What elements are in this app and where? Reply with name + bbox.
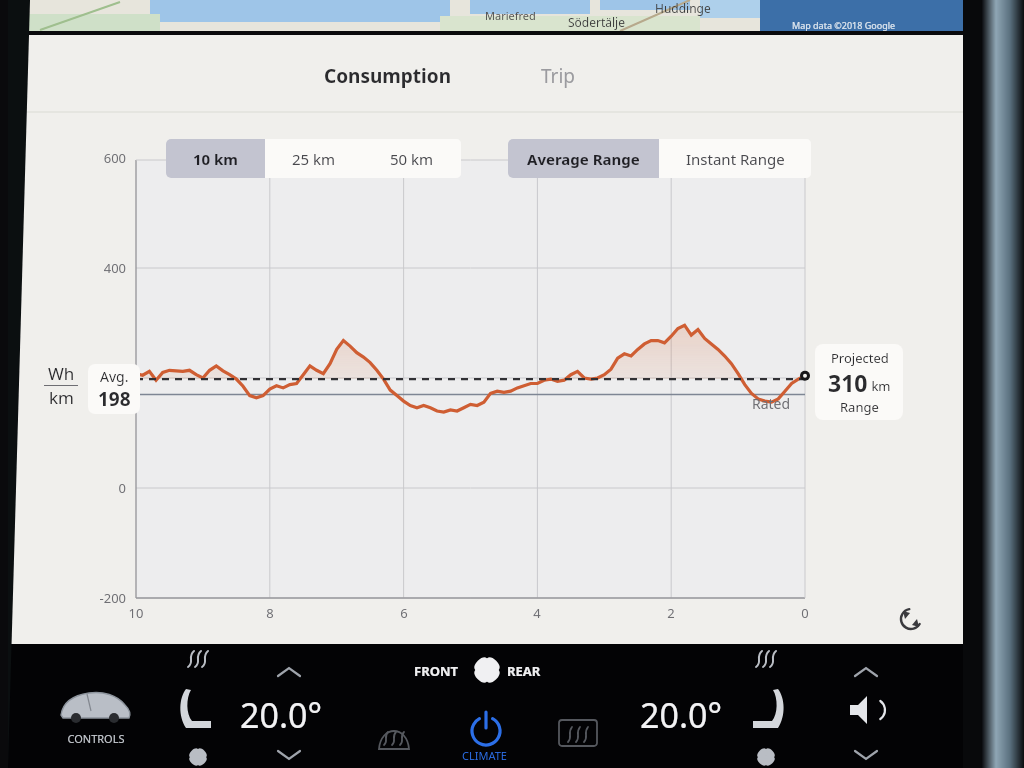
staticText: Trip bbox=[541, 63, 576, 89]
button[interactable]: Swap units bbox=[895, 603, 927, 635]
staticText: 20.0° bbox=[240, 692, 323, 738]
staticText: 25 km bbox=[292, 149, 336, 169]
staticText: 0 bbox=[787, 604, 823, 622]
staticText: Range bbox=[840, 398, 879, 416]
button[interactable]: Rear defrost bbox=[554, 710, 604, 758]
staticText: 10 km bbox=[193, 149, 238, 169]
button[interactable]: Increase left temperature bbox=[268, 655, 312, 693]
button[interactable]: Mute bbox=[838, 688, 888, 734]
staticText: Wh bbox=[48, 362, 75, 385]
staticText: CLIMATE bbox=[462, 748, 507, 763]
button[interactable]: 25 km bbox=[265, 139, 363, 178]
button[interactable]: Average Range bbox=[508, 139, 659, 178]
staticText: 6 bbox=[386, 604, 422, 622]
button[interactable]: Right seat bbox=[744, 690, 790, 768]
button[interactable]: REAR bbox=[507, 662, 541, 680]
button[interactable]: 20.0° bbox=[640, 692, 723, 738]
button[interactable]: Consumption bbox=[310, 57, 465, 95]
staticText: CONTROLS bbox=[55, 731, 137, 746]
staticText: Avg. bbox=[100, 367, 129, 386]
button[interactable]: FRONT bbox=[414, 662, 459, 680]
button[interactable]: 10 km bbox=[166, 139, 265, 178]
staticText: Instant Range bbox=[686, 149, 785, 169]
staticText: Average Range bbox=[527, 149, 640, 169]
staticText: 10 bbox=[118, 604, 154, 622]
staticText: 20.0° bbox=[640, 692, 723, 738]
staticText: 400 bbox=[82, 259, 126, 277]
button[interactable]: Decrease left temperature bbox=[268, 738, 312, 768]
button[interactable]: Instant Range bbox=[659, 139, 811, 178]
button[interactable]: 20.0° bbox=[240, 692, 323, 738]
button[interactable]: Controls bbox=[40, 676, 152, 756]
staticText: km bbox=[868, 377, 891, 395]
staticText: 2 bbox=[653, 604, 689, 622]
staticText: Map data ©2018 Google bbox=[792, 19, 896, 31]
staticText: REAR bbox=[507, 662, 541, 680]
button[interactable]: CLIMATE bbox=[462, 748, 507, 763]
button[interactable]: Trip bbox=[527, 57, 590, 95]
button[interactable]: Left seat bbox=[176, 690, 222, 768]
staticText: Huddinge bbox=[655, 0, 711, 16]
button[interactable]: Avg. bbox=[88, 364, 140, 414]
button[interactable]: Fan bbox=[462, 650, 514, 694]
staticText: 4 bbox=[519, 604, 555, 622]
staticText: 600 bbox=[82, 149, 126, 167]
staticText: Rated bbox=[752, 394, 791, 413]
button[interactable]: Volume down bbox=[845, 738, 889, 768]
button[interactable]: Projected bbox=[815, 344, 903, 420]
staticText: Projected bbox=[831, 349, 889, 367]
staticText: Mariefred bbox=[485, 8, 536, 23]
staticText: Södertälje bbox=[568, 14, 625, 30]
staticText: 50 km bbox=[390, 149, 434, 169]
staticText: -200 bbox=[82, 589, 126, 607]
button[interactable]: Volume up bbox=[845, 655, 889, 693]
staticText: 198 bbox=[98, 386, 131, 412]
button[interactable]: Right seat heater bbox=[744, 648, 790, 698]
button[interactable]: Left seat heater bbox=[176, 648, 222, 698]
button[interactable]: Climate power bbox=[462, 708, 512, 754]
staticText: km bbox=[49, 386, 74, 409]
staticText: Consumption bbox=[324, 63, 451, 89]
staticText: 310 bbox=[828, 367, 868, 398]
button[interactable]: Front defrost bbox=[370, 712, 420, 760]
staticText: 8 bbox=[252, 604, 288, 622]
button[interactable]: 50 km bbox=[363, 139, 461, 178]
staticText: FRONT bbox=[414, 662, 459, 680]
staticText: 0 bbox=[106, 479, 126, 497]
